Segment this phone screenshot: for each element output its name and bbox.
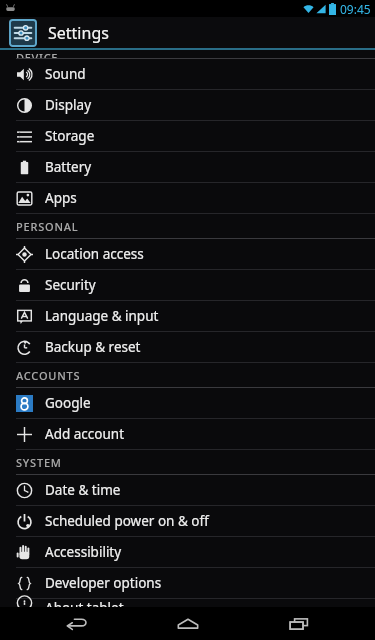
staticText: Sound <box>45 65 86 83</box>
staticText: Date & time <box>45 481 121 499</box>
button[interactable]: About tablet <box>0 599 375 607</box>
button[interactable]: Date & time <box>0 475 375 505</box>
staticText: Developer options <box>45 574 162 592</box>
staticText: Settings <box>48 22 109 44</box>
button[interactable]: Location access <box>0 239 375 269</box>
button[interactable]: Home <box>153 607 223 640</box>
button[interactable]: Developer options <box>0 568 375 598</box>
button[interactable]: Battery <box>0 152 375 182</box>
staticText: Battery <box>45 158 92 176</box>
button[interactable]: Apps <box>0 183 375 213</box>
button[interactable]: Recent apps <box>264 607 334 640</box>
button[interactable]: Settings <box>0 17 375 48</box>
button[interactable]: Storage <box>0 121 375 151</box>
staticText: Language & input <box>45 307 159 325</box>
staticText: Storage <box>45 127 95 145</box>
staticText: Add account <box>45 425 125 443</box>
button[interactable]: Security <box>0 270 375 300</box>
staticText: Display <box>45 96 92 114</box>
staticText: Security <box>45 276 96 294</box>
button[interactable]: Backup & reset <box>0 332 375 362</box>
staticText: Scheduled power on & off <box>45 512 209 530</box>
staticText: Apps <box>45 189 77 207</box>
staticText: PERSONAL <box>16 219 79 234</box>
staticText: About tablet <box>45 599 124 607</box>
staticText: DEVICE <box>16 50 59 59</box>
button[interactable]: Back <box>41 607 111 640</box>
staticText: SYSTEM <box>16 455 62 470</box>
staticText: ACCOUNTS <box>16 368 81 383</box>
staticText: Backup & reset <box>45 338 141 356</box>
staticText: Accessibility <box>45 543 122 561</box>
staticText: 09:45 <box>340 1 371 17</box>
button[interactable]: Language & input <box>0 301 375 331</box>
staticText: Google <box>45 394 91 412</box>
button[interactable]: Scheduled power on & off <box>0 506 375 536</box>
button[interactable]: Display <box>0 90 375 120</box>
staticText: Location access <box>45 245 144 263</box>
button[interactable]: Sound <box>0 59 375 89</box>
button[interactable]: Accessibility <box>0 537 375 567</box>
button[interactable]: Google <box>0 388 375 418</box>
button[interactable]: Add account <box>0 419 375 449</box>
other: Settings <box>10 20 36 46</box>
